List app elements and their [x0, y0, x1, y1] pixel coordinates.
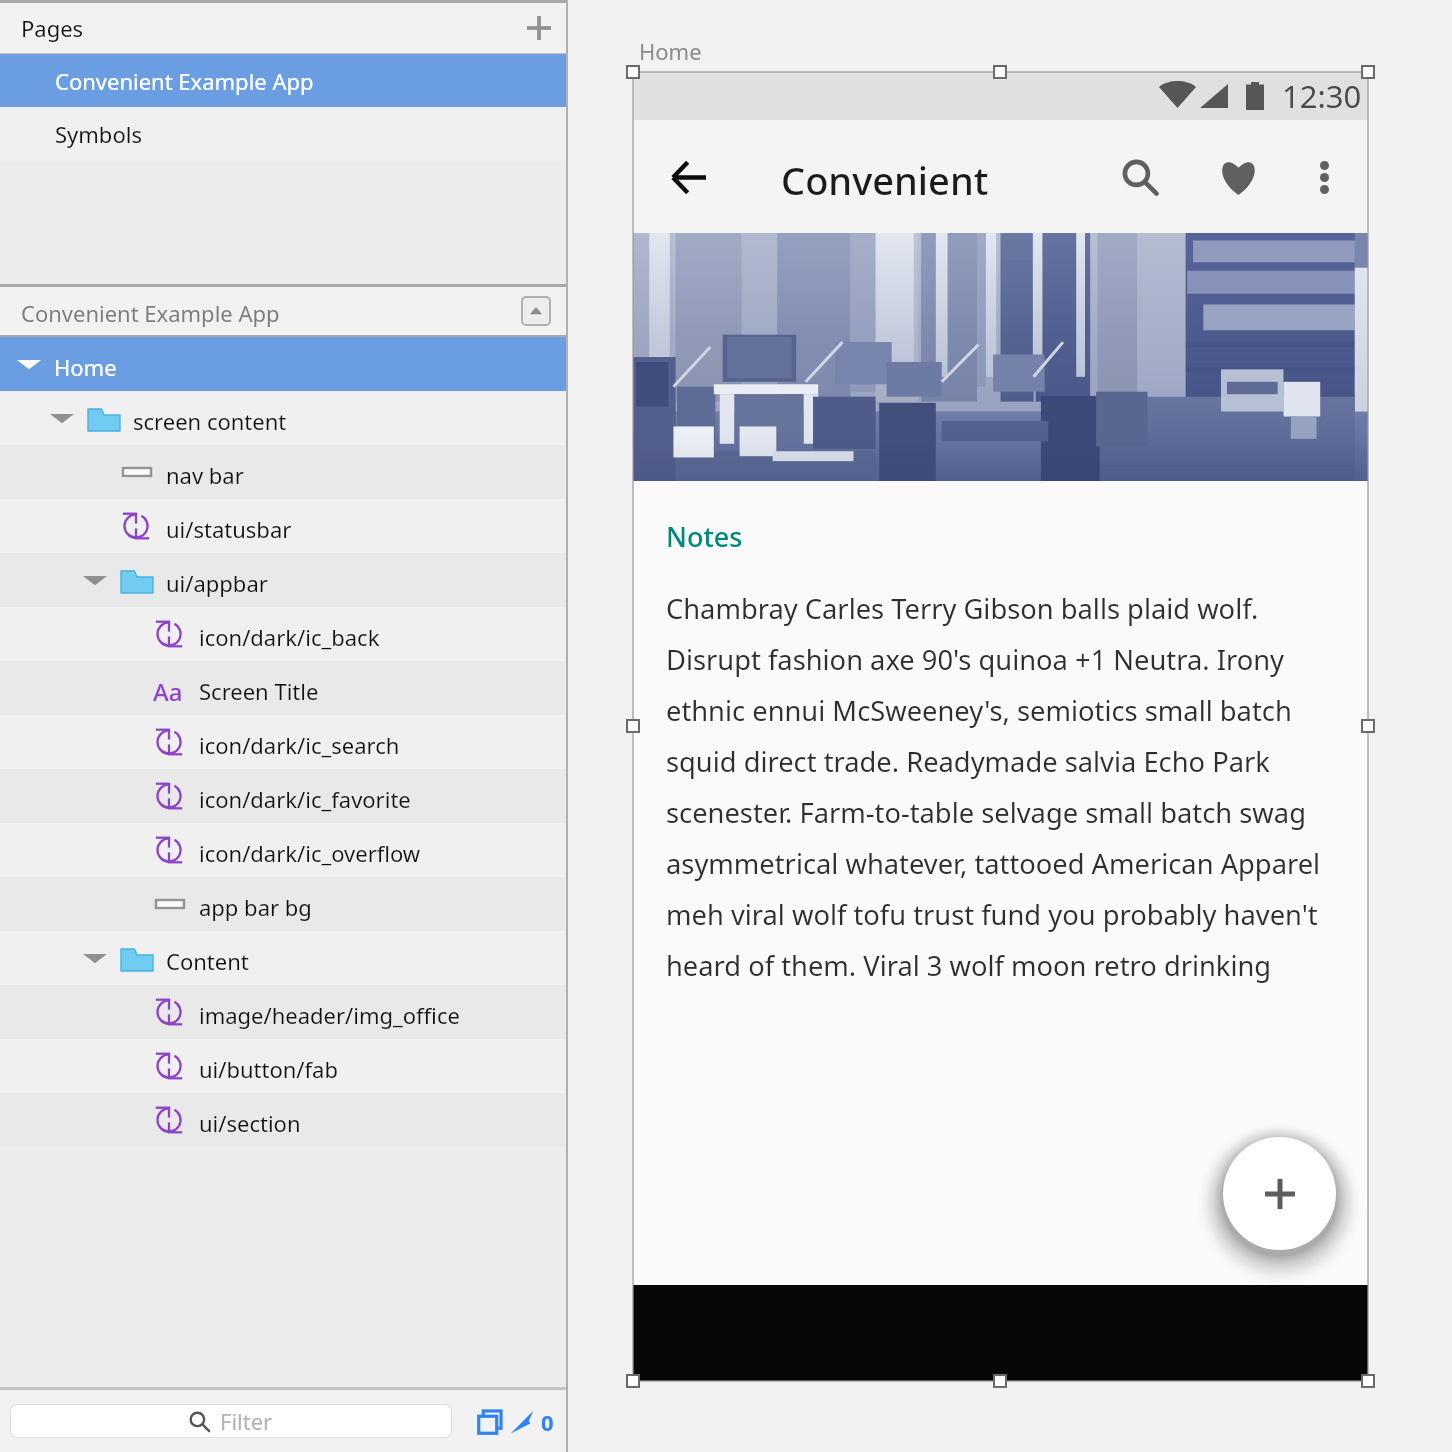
staticText: image/header/img_office: [199, 1000, 460, 1030]
button[interactable]: Content: [0, 931, 566, 985]
staticText: Pages: [21, 13, 84, 43]
staticText: nav bar: [166, 460, 244, 490]
staticText: Screen Title: [199, 676, 319, 706]
button[interactable]: nav bar: [0, 445, 566, 499]
button[interactable]: ui/section: [0, 1093, 566, 1147]
button[interactable]: Aa: [0, 661, 566, 715]
button[interactable]: Collapse all: [522, 297, 550, 325]
staticText: icon/dark/ic_overflow: [199, 838, 421, 868]
button[interactable]: Search: [1111, 148, 1169, 206]
staticText: Aa: [153, 675, 183, 708]
button[interactable]: ui/button/fab: [0, 1039, 566, 1093]
button[interactable]: Add: [1223, 1137, 1336, 1250]
staticText: icon/dark/ic_back: [199, 622, 380, 652]
button[interactable]: Add page: [527, 16, 551, 40]
staticText: ui/appbar: [166, 568, 268, 598]
staticText: Filter: [220, 1406, 273, 1436]
staticText: icon/dark/ic_favorite: [199, 784, 411, 814]
button[interactable]: Edit: [510, 1410, 534, 1434]
staticText: ui/button/fab: [199, 1054, 338, 1084]
button[interactable]: icon/dark/ic_back: [0, 607, 566, 661]
button[interactable]: screen content: [0, 391, 566, 445]
button[interactable]: icon/dark/ic_favorite: [0, 769, 566, 823]
staticText: Chambray Carles Terry Gibson balls plaid…: [666, 590, 1346, 984]
button[interactable]: Duplicate: [478, 1410, 502, 1434]
button[interactable]: ui/appbar: [0, 553, 566, 607]
button[interactable]: Pages: [0, 3, 566, 53]
button[interactable]: icon/dark/ic_search: [0, 715, 566, 769]
staticText: Convenient Example App: [21, 298, 280, 328]
staticText: 12:30: [1282, 75, 1362, 117]
button[interactable]: Favorite: [1209, 148, 1267, 206]
staticText: Notes: [666, 518, 743, 555]
staticText: Content: [166, 946, 249, 976]
staticText: Symbols: [55, 119, 142, 149]
button[interactable]: More options: [1295, 148, 1353, 206]
staticText: screen content: [133, 406, 287, 436]
staticText: Convenient: [781, 154, 989, 206]
button[interactable]: Convenient Example App: [0, 54, 566, 107]
button[interactable]: Symbols: [0, 107, 566, 161]
staticText: 0: [541, 1407, 554, 1437]
button[interactable]: Filter: [10, 1404, 452, 1438]
button[interactable]: image/header/img_office: [0, 985, 566, 1039]
staticText: Home: [54, 352, 117, 382]
button[interactable]: ui/statusbar: [0, 499, 566, 553]
staticText: icon/dark/ic_search: [199, 730, 400, 760]
staticText: Home: [639, 36, 702, 66]
staticText: ui/statusbar: [166, 514, 292, 544]
staticText: ui/section: [199, 1108, 301, 1138]
staticText: Convenient Example App: [55, 66, 314, 96]
button[interactable]: Back: [661, 149, 717, 205]
button[interactable]: app bar bg: [0, 877, 566, 931]
button[interactable]: Home: [0, 337, 566, 391]
staticText: app bar bg: [199, 892, 312, 922]
button[interactable]: Convenient Example App: [0, 287, 566, 335]
button[interactable]: icon/dark/ic_overflow: [0, 823, 566, 877]
